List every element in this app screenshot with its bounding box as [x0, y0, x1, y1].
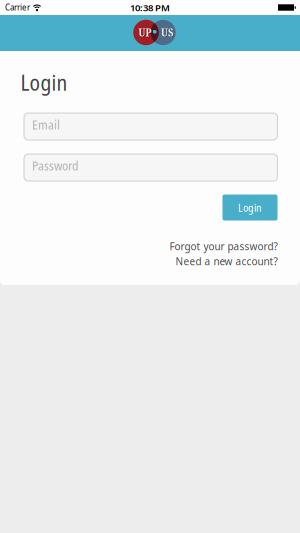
staticText: Email — [32, 116, 60, 133]
staticText: UP — [139, 25, 152, 40]
staticText: US — [161, 25, 173, 40]
staticText: Need a new account? — [175, 255, 277, 268]
button[interactable]: Forgot your password? — [169, 240, 277, 253]
staticText: US — [161, 24, 173, 40]
button[interactable]: Login — [222, 195, 277, 221]
button[interactable]: Need a new account? — [175, 255, 277, 268]
staticText: Password — [32, 157, 78, 174]
staticText: UP — [138, 25, 151, 40]
staticText: Login — [238, 200, 262, 215]
staticText: Carrier — [5, 2, 30, 13]
staticText: Login — [20, 68, 67, 97]
staticText: to — [153, 30, 156, 33]
staticText: 10:38 PM — [130, 1, 170, 14]
staticText: Forgot your password? — [169, 240, 277, 253]
